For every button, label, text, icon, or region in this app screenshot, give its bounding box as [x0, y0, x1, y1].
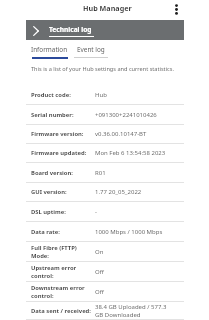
staticText: Technical log: [49, 25, 92, 34]
staticText: On: [95, 248, 167, 256]
staticText: Event log: [77, 45, 105, 54]
staticText: DSL uptime:: [31, 208, 66, 216]
staticText: v0.36.00.10147-BT: [95, 130, 167, 138]
staticText: Off: [95, 268, 167, 276]
button[interactable]: Upstream error control:: [26, 262, 184, 282]
staticText: Data rate:: [31, 228, 60, 236]
button[interactable]: Technical log: [26, 20, 184, 40]
staticText: Downstream error control:: [31, 284, 92, 300]
staticText: +091300+2241010426: [95, 111, 167, 119]
staticText: Mon Feb 6 13:54:58 2023: [95, 149, 167, 157]
staticText: Serial number:: [31, 111, 74, 119]
button[interactable]: GUI version:: [26, 183, 184, 202]
staticText: 1.77 20_05_2022: [95, 188, 167, 196]
staticText: Full Fibre (FTTP) Mode:: [31, 244, 92, 260]
staticText: Data sent / received:: [31, 307, 91, 315]
button[interactable]: Information: [26, 44, 73, 59]
staticText: Off: [95, 288, 167, 296]
staticText: 1000 Mbps / 1000 Mbps: [95, 228, 167, 236]
staticText: Product code:: [31, 91, 71, 99]
button[interactable]: Firmware updated:: [26, 144, 184, 163]
staticText: GUI version:: [31, 188, 67, 196]
staticText: Upstream error control:: [31, 264, 92, 280]
staticText: 38.4 GB Uploaded / 577.3 GB Downloaded: [95, 303, 167, 319]
button[interactable]: Downstream error control:: [26, 282, 184, 302]
button[interactable]: Firmware version:: [26, 125, 184, 144]
button[interactable]: Data sent / received:: [26, 302, 184, 320]
staticText: Firmware updated:: [31, 149, 87, 157]
staticText: This is a list of your Hub settings and …: [31, 65, 174, 73]
button[interactable]: More options: [170, 3, 183, 16]
staticText: Hub: [95, 91, 167, 99]
staticText: R01: [95, 169, 167, 177]
button[interactable]: DSL uptime:: [26, 202, 184, 222]
staticText: Hub Manager: [83, 3, 132, 13]
button[interactable]: Data rate:: [26, 222, 184, 242]
button[interactable]: Product code:: [26, 85, 184, 105]
button[interactable]: Event log: [72, 44, 110, 58]
button[interactable]: Serial number:: [26, 105, 184, 125]
button[interactable]: Board version:: [26, 163, 184, 183]
staticText: Board version:: [31, 169, 73, 177]
staticText: Firmware version:: [31, 130, 84, 138]
staticText: Information: [31, 45, 68, 54]
button[interactable]: Full Fibre (FTTP) Mode:: [26, 242, 184, 262]
